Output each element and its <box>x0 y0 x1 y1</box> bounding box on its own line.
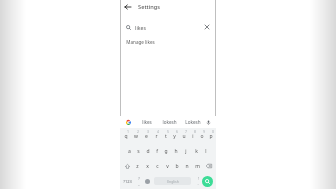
button[interactable]: Period <box>193 174 202 188</box>
button[interactable]: a <box>125 144 134 158</box>
staticText: m <box>195 163 200 170</box>
button[interactable]: j <box>181 144 191 158</box>
staticText: w <box>134 133 138 140</box>
button[interactable]: x <box>142 159 152 173</box>
staticText: r <box>155 133 158 140</box>
staticText: lokesh <box>162 119 177 125</box>
button[interactable]: Lokesh <box>181 116 204 128</box>
staticText: 3 <box>147 130 149 134</box>
button[interactable]: Back <box>123 2 133 12</box>
staticText: c <box>156 163 159 170</box>
button[interactable]: c <box>152 159 162 173</box>
staticText: j <box>185 148 187 155</box>
button[interactable]: m <box>192 159 202 173</box>
button[interactable]: Search <box>202 176 213 187</box>
button[interactable]: b <box>172 159 182 173</box>
button[interactable]: v <box>162 159 172 173</box>
button[interactable]: f <box>152 144 161 158</box>
staticText: v <box>166 163 169 170</box>
button[interactable]: 2 <box>131 129 141 143</box>
button[interactable]: Voice input <box>204 118 212 126</box>
staticText: 8 <box>194 130 196 134</box>
staticText: i <box>192 133 194 140</box>
staticText: likes <box>142 119 152 125</box>
button[interactable]: Backspace <box>202 159 215 173</box>
staticText: g <box>164 148 168 155</box>
staticText: b <box>175 163 179 170</box>
button[interactable]: likes <box>120 21 216 33</box>
button[interactable]: 7 <box>179 129 188 143</box>
staticText: z <box>136 163 139 170</box>
button[interactable]: z <box>133 159 142 173</box>
button[interactable]: s <box>134 144 143 158</box>
staticText: y <box>173 133 176 140</box>
staticText: l <box>205 148 207 155</box>
staticText: likes <box>135 24 146 31</box>
button[interactable]: 5 <box>161 129 170 143</box>
button[interactable]: 3 <box>141 129 151 143</box>
staticText: h <box>174 148 178 155</box>
staticText: p <box>209 133 213 140</box>
button[interactable]: Space <box>154 177 191 185</box>
staticText: x <box>146 163 149 170</box>
button[interactable]: Emoji <box>143 174 152 188</box>
button[interactable]: 1 <box>121 129 131 143</box>
staticText: 7 <box>185 130 187 134</box>
staticText: n <box>185 163 189 170</box>
button[interactable]: k <box>191 144 201 158</box>
staticText: Lokesh <box>185 119 201 125</box>
staticText: 4 <box>157 130 159 134</box>
staticText: e <box>145 133 148 140</box>
button[interactable]: Google <box>124 118 132 126</box>
staticText: d <box>146 148 150 155</box>
staticText: 6 <box>176 130 178 134</box>
staticText: Manage likes <box>126 39 155 45</box>
button[interactable]: 9 <box>197 129 206 143</box>
staticText: ?123 <box>123 179 132 184</box>
staticText: t <box>165 133 167 140</box>
button[interactable]: 8 <box>188 129 197 143</box>
button[interactable]: n <box>182 159 192 173</box>
staticText: a <box>128 148 131 155</box>
staticText: English <box>167 179 179 184</box>
button[interactable]: 0 <box>206 129 215 143</box>
staticText: u <box>182 133 186 140</box>
staticText: f <box>156 148 158 155</box>
staticText: . <box>197 181 199 187</box>
button[interactable]: lokesh <box>158 116 181 128</box>
staticText: o <box>200 133 204 140</box>
staticText: ! <box>198 176 199 181</box>
button[interactable]: 4 <box>151 129 161 143</box>
staticText: Settings <box>138 3 160 11</box>
button[interactable]: l <box>201 144 211 158</box>
button[interactable]: Clear search <box>202 22 212 32</box>
button[interactable]: g <box>161 144 171 158</box>
button[interactable]: Manage likes <box>120 37 216 46</box>
staticText: 5 <box>167 130 169 134</box>
staticText: ? <box>138 176 140 181</box>
staticText: 9 <box>203 130 205 134</box>
button[interactable]: ?123 <box>121 174 134 188</box>
staticText: 0 <box>212 130 214 134</box>
staticText: q <box>124 133 128 140</box>
button[interactable]: Shift <box>121 159 133 173</box>
button[interactable]: d <box>143 144 152 158</box>
staticText: s <box>137 148 140 155</box>
staticText: 2 <box>137 130 139 134</box>
staticText: 1 <box>127 130 129 134</box>
button[interactable]: Comma <box>134 174 143 188</box>
staticText: , <box>138 181 140 187</box>
button[interactable]: h <box>171 144 181 158</box>
button[interactable]: 6 <box>170 129 179 143</box>
button[interactable]: likes <box>136 116 158 128</box>
staticText: k <box>195 148 198 155</box>
